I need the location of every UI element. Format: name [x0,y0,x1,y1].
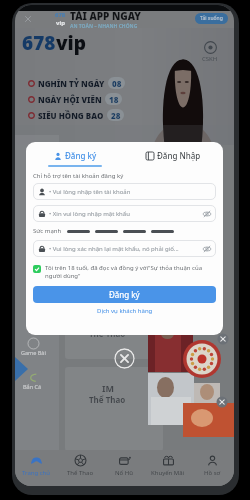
button[interactable]: Thể Thao [58,454,102,483]
staticText: 678 [55,11,66,19]
staticText: Trang chủ [22,469,51,477]
staticText: Đăng ký [65,150,97,161]
staticText: Thể Thao [67,469,94,477]
staticText: Thể Thao [89,394,126,405]
button[interactable]: Tôi trên 18 tuổi, đã đọc và đồng ý với"S… [33,264,216,280]
staticText: Khuyến Mãi [151,469,185,477]
button[interactable]: Đăng ký [26,142,124,167]
button[interactable]: • Xin vui lòng nhập mật khẩu [38,205,211,222]
staticText: vip [56,30,87,56]
staticText: 28 [111,110,121,121]
staticText: • Vui lòng xác nhận lại mật khẩu, nó phả… [49,245,179,253]
staticText: Dịch vụ khách hàng [97,307,153,315]
staticText: Bắn Cá [23,383,42,390]
other: Show password [203,210,211,218]
staticText: AN TOÀN – NHANH CHÓNG [70,23,138,28]
staticText: Thể Thao [89,328,126,339]
staticText: SIÊU HỒNG BAO [38,110,104,121]
button[interactable]: Close [114,348,135,369]
button[interactable]: Customer service [202,41,218,63]
staticText: CSKH [202,55,218,63]
staticText: Game Bài [21,349,46,356]
staticText: Đăng ký [109,289,140,300]
staticText: Nổ Hũ [115,469,133,477]
other: Show password [203,245,211,253]
button[interactable]: Khuyến Mãi [146,454,190,483]
button[interactable]: Hồ sơ [190,454,234,483]
staticText: 08 [112,78,122,89]
staticText: Tải xuống [200,15,223,22]
staticText: vip [56,19,66,27]
staticText: NGÀY HỘI VIÊN [38,94,102,105]
staticText: 18 [109,94,119,105]
staticText: TẢI APP NGAY [70,9,142,23]
staticText: Chỉ hỗ trợ tên tài khoản đăng ký [33,172,124,180]
staticText: Đăng Nhập [157,150,201,161]
staticText: 678 [22,30,56,56]
button[interactable]: Close ad [23,14,33,24]
button[interactable]: Dịch vụ khách hàng [33,307,216,315]
button[interactable]: Nổ Hũ [102,454,146,483]
staticText: IM [102,382,114,394]
staticText: • Xin vui lòng nhập mật khẩu [49,210,130,218]
button[interactable]: Đăng Nhập [124,142,223,165]
button[interactable]: Trang chủ [15,454,58,483]
button[interactable]: • Vui lòng nhập tên tài khoản [38,183,211,200]
staticText: NGHÌN TỶ NGÀY [38,78,105,89]
staticText: Tôi trên 18 tuổi, đã đọc và đồng ý với"S… [45,264,216,280]
button[interactable]: • Vui lòng xác nhận lại mật khẩu, nó phả… [38,240,211,257]
button[interactable]: Đăng ký [33,286,216,303]
staticText: Sức mạnh [33,227,62,235]
staticText: • Vui lòng nhập tên tài khoản [49,188,131,196]
button[interactable]: Tải xuống [195,13,228,24]
staticText: Hồ sơ [204,469,221,477]
